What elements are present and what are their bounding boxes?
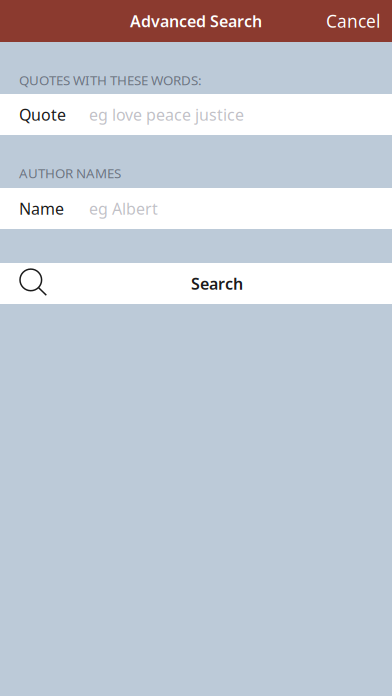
staticText: Search: [191, 273, 243, 294]
staticText: Name: [19, 198, 64, 219]
staticText: eg Albert: [89, 198, 158, 219]
button[interactable]: Name: [0, 188, 392, 229]
staticText: Quote: [19, 104, 66, 125]
button[interactable]: Cancel: [326, 9, 392, 33]
staticText: AUTHOR NAMES: [19, 164, 121, 182]
staticText: QUOTES WITH THESE WORDS:: [19, 71, 202, 89]
staticText: Cancel: [326, 9, 380, 33]
button[interactable]: Quote: [0, 94, 392, 135]
button[interactable]: Search: [0, 263, 392, 304]
staticText: eg love peace justice: [89, 104, 244, 125]
staticText: Advanced Search: [130, 10, 262, 32]
